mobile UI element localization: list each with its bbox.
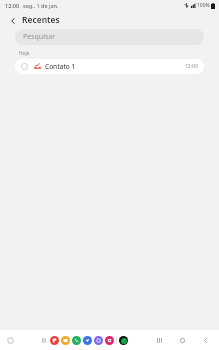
staticText: 12:00 [5, 2, 20, 9]
staticText: Hoje [19, 50, 30, 57]
button[interactable]: Abrir app [83, 336, 92, 345]
button[interactable]: Capturar tela [5, 335, 15, 345]
staticText: Contato 1 [45, 62, 76, 71]
button[interactable]: Voltar [200, 335, 211, 346]
button[interactable]: Alternar barra de tarefas [40, 335, 47, 345]
button[interactable]: Abrir app [105, 336, 114, 345]
button[interactable]: Pesquisar [15, 29, 204, 45]
button[interactable]: Abrir app [94, 336, 103, 345]
staticText: 12:00 [185, 63, 198, 70]
button[interactable]: App recente [119, 336, 128, 345]
staticText: Recentes [22, 14, 60, 26]
button[interactable]: Abrir app [50, 336, 59, 345]
staticText: Pesquisar [23, 32, 56, 42]
button[interactable]: Recentes [154, 335, 165, 346]
button[interactable]: Início [177, 335, 188, 346]
button[interactable]: Abrir app [72, 336, 81, 345]
button[interactable]: Abrir app [61, 336, 70, 345]
button[interactable]: Contato 1 [15, 59, 204, 74]
staticText: seg., 1 de jan. [23, 2, 59, 9]
button[interactable]: Voltar [6, 14, 19, 27]
staticText: 100% [197, 2, 210, 9]
